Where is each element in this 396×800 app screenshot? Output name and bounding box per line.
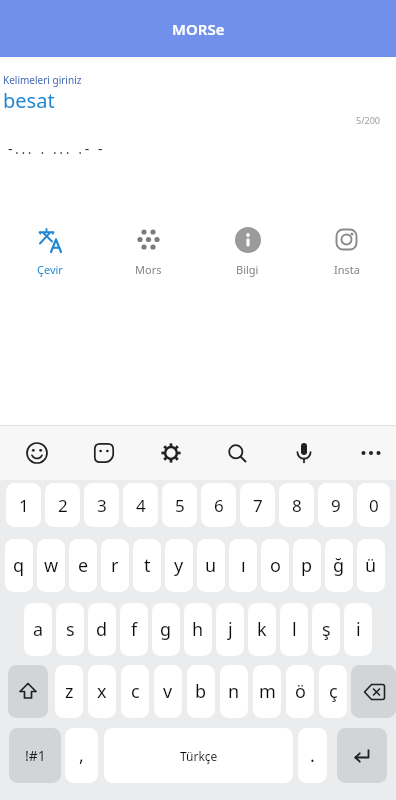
button[interactable] xyxy=(351,665,396,718)
button[interactable]: . xyxy=(298,728,327,783)
button[interactable]: 2 xyxy=(45,483,80,527)
button[interactable]: Mors xyxy=(99,226,198,277)
staticText: r xyxy=(111,553,119,578)
button[interactable]: ü xyxy=(357,539,385,592)
button[interactable]: l xyxy=(280,603,308,656)
button[interactable] xyxy=(337,728,387,783)
button[interactable] xyxy=(84,433,124,473)
button[interactable]: 5 xyxy=(162,483,197,527)
button[interactable]: Insta xyxy=(297,226,396,277)
staticText: d xyxy=(96,617,108,642)
staticText: 1 xyxy=(19,494,29,517)
button[interactable]: b xyxy=(187,665,215,718)
staticText: ü xyxy=(365,553,377,578)
button[interactable]: f xyxy=(120,603,148,656)
button[interactable]: 4 xyxy=(123,483,158,527)
staticText: 5 xyxy=(175,494,185,517)
button[interactable]: ş xyxy=(312,603,340,656)
button[interactable]: 9 xyxy=(318,483,353,527)
button[interactable]: n xyxy=(220,665,248,718)
button[interactable]: v xyxy=(154,665,182,718)
staticText: l xyxy=(292,617,297,642)
button[interactable]: 8 xyxy=(279,483,314,527)
staticText: n xyxy=(228,679,240,704)
button[interactable]: 7 xyxy=(240,483,275,527)
staticText: besat xyxy=(3,87,55,114)
button[interactable]: ö xyxy=(286,665,314,718)
button[interactable]: r xyxy=(101,539,129,592)
staticText: 5/200 xyxy=(356,114,380,126)
button[interactable]: s xyxy=(56,603,84,656)
button[interactable] xyxy=(8,665,48,718)
staticText: Çevir xyxy=(37,262,63,277)
staticText: c xyxy=(131,679,140,704)
button[interactable]: k xyxy=(248,603,276,656)
button[interactable]: z xyxy=(55,665,83,718)
staticText: j xyxy=(228,617,233,642)
staticText: ş xyxy=(322,617,331,642)
staticText: g xyxy=(160,617,172,642)
staticText: y xyxy=(174,553,184,578)
staticText: u xyxy=(205,553,217,578)
button[interactable]: u xyxy=(197,539,225,592)
button[interactable]: j xyxy=(216,603,244,656)
button[interactable] xyxy=(284,433,324,473)
button[interactable]: p xyxy=(293,539,321,592)
button[interactable]: Bilgi xyxy=(198,226,297,277)
button[interactable]: m xyxy=(253,665,281,718)
button[interactable]: Türkçe xyxy=(104,728,293,783)
staticText: ı xyxy=(241,553,246,578)
staticText: 4 xyxy=(136,494,146,517)
button[interactable]: x xyxy=(88,665,116,718)
button[interactable]: , xyxy=(65,728,98,783)
button[interactable] xyxy=(17,433,57,473)
staticText: !#1 xyxy=(25,746,46,765)
staticText: f xyxy=(131,617,138,642)
button[interactable] xyxy=(351,433,391,473)
staticText: w xyxy=(44,553,59,578)
staticText: i xyxy=(356,617,361,642)
button[interactable]: ğ xyxy=(325,539,353,592)
staticText: s xyxy=(66,617,75,642)
button[interactable]: 6 xyxy=(201,483,236,527)
staticText: v xyxy=(163,679,173,704)
button[interactable]: y xyxy=(165,539,193,592)
button[interactable]: t xyxy=(133,539,161,592)
button[interactable]: e xyxy=(69,539,97,592)
staticText: 2 xyxy=(58,494,68,517)
button[interactable] xyxy=(217,433,257,473)
button[interactable]: q xyxy=(5,539,33,592)
button[interactable]: w xyxy=(37,539,65,592)
staticText: ö xyxy=(295,679,306,704)
staticText: Bilgi xyxy=(236,262,259,277)
staticText: 7 xyxy=(253,494,263,517)
staticText: 8 xyxy=(292,494,302,517)
button[interactable]: 3 xyxy=(84,483,119,527)
button[interactable]: g xyxy=(152,603,180,656)
staticText: , xyxy=(79,743,84,768)
button[interactable]: d xyxy=(88,603,116,656)
staticText: 3 xyxy=(97,494,107,517)
button[interactable]: 0 xyxy=(357,483,390,527)
button[interactable]: ç xyxy=(319,665,347,718)
staticText: . xyxy=(310,743,315,768)
button[interactable]: Çevir xyxy=(0,226,99,277)
staticText: 6 xyxy=(214,494,224,517)
button[interactable]: !#1 xyxy=(9,728,61,783)
staticText: h xyxy=(192,617,204,642)
staticText: z xyxy=(65,679,74,704)
button[interactable]: o xyxy=(261,539,289,592)
staticText: 9 xyxy=(331,494,341,517)
staticText: x xyxy=(97,679,107,704)
button[interactable]: h xyxy=(184,603,212,656)
button[interactable]: c xyxy=(121,665,149,718)
staticText: MORSe xyxy=(172,19,225,39)
button[interactable]: 1 xyxy=(6,483,41,527)
button[interactable]: i xyxy=(344,603,372,656)
staticText: t xyxy=(144,553,151,578)
button[interactable]: ı xyxy=(229,539,257,592)
button[interactable] xyxy=(151,433,191,473)
staticText: Mors xyxy=(135,262,162,277)
staticText: Kelimeleri giriniz xyxy=(3,73,82,87)
button[interactable]: a xyxy=(24,603,52,656)
